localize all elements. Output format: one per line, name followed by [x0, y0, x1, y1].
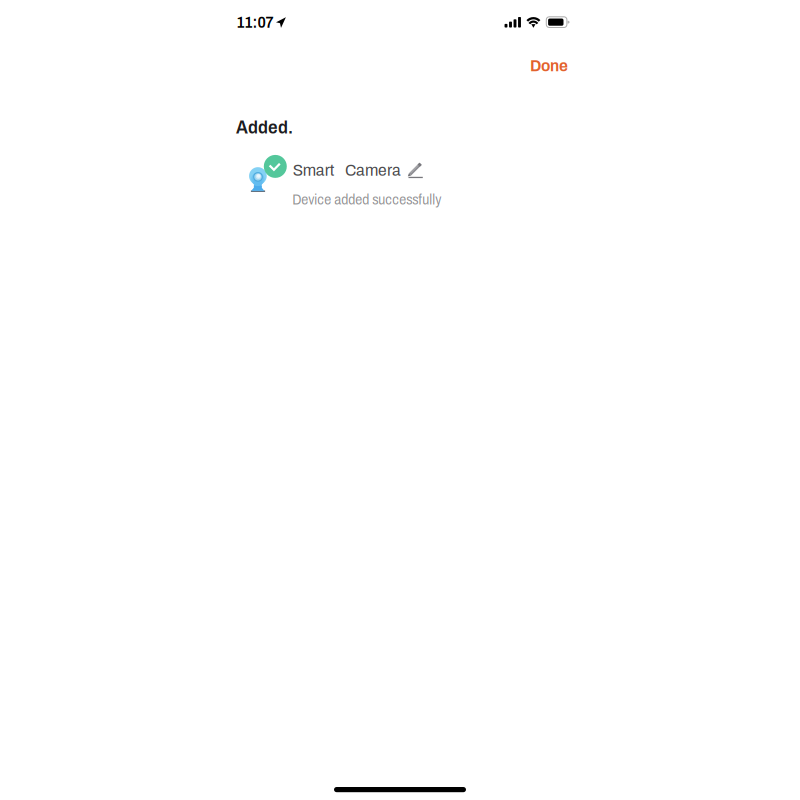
staticText: Done: [530, 56, 568, 75]
staticText: Added.: [236, 117, 293, 137]
staticText: 11:07: [236, 14, 273, 31]
button[interactable]: Done: [516, 45, 582, 86]
staticText: Smart: [293, 161, 335, 179]
staticText: Camera: [345, 161, 401, 179]
button[interactable]: Smart Camera, rename: [293, 158, 425, 181]
staticText: Device added successfully: [292, 192, 441, 207]
